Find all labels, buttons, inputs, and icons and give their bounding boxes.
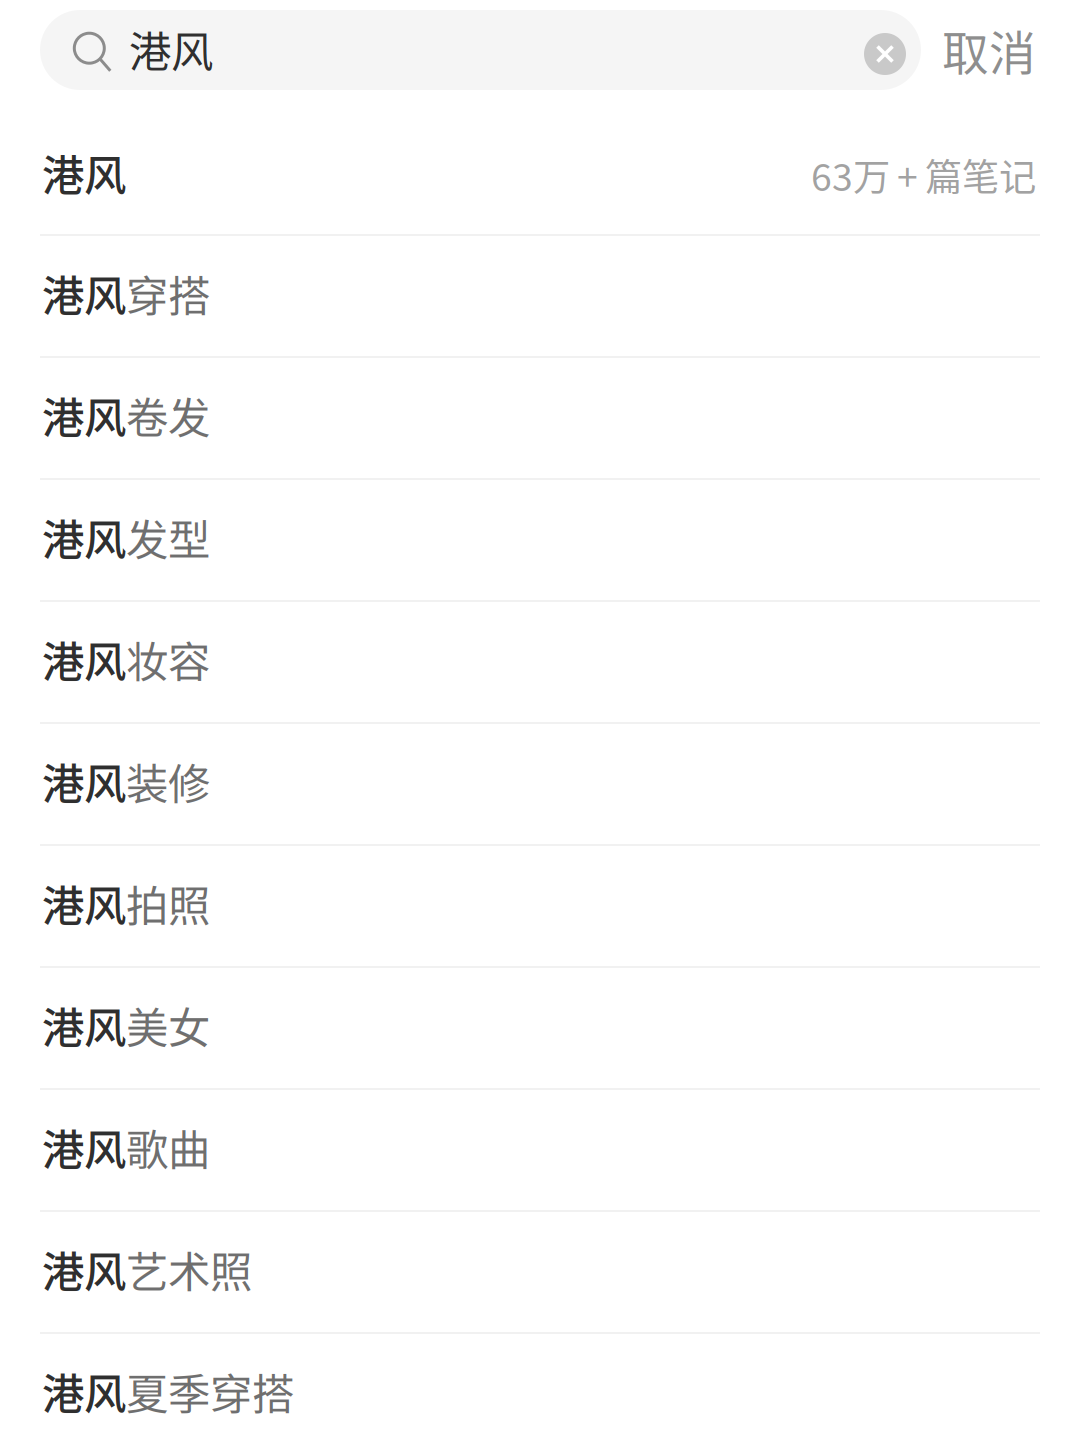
staticText: 港风 [42, 263, 126, 323]
staticText: 艺术照 [126, 1239, 252, 1299]
staticText: 穿搭 [126, 263, 210, 323]
staticText: 港风 [42, 995, 126, 1055]
staticText: 港风 [42, 629, 126, 689]
staticText: 卷发 [126, 385, 210, 445]
staticText: 港风 [42, 1117, 126, 1177]
staticText: 歌曲 [126, 1117, 210, 1177]
staticText: 港风 [42, 751, 126, 811]
button[interactable]: 取消 [942, 10, 1036, 90]
staticText: 63万 + 篇笔记 [811, 148, 1036, 201]
button[interactable]: 港风 [0, 236, 1080, 356]
staticText: 港风 [42, 507, 126, 567]
button[interactable]: 港风 [0, 358, 1080, 478]
button[interactable]: 港风 [0, 846, 1080, 966]
button[interactable]: 港风 [0, 1334, 1080, 1437]
staticText: 装修 [126, 751, 210, 811]
button[interactable]: 港风 [0, 480, 1080, 600]
staticText: 港风 [42, 143, 126, 202]
staticText: 港风 [42, 1361, 126, 1421]
button[interactable]: 港风 [0, 102, 1080, 234]
staticText: 拍照 [126, 873, 210, 933]
staticText: 发型 [126, 507, 210, 567]
staticText: 美女 [126, 995, 210, 1055]
staticText: 夏季穿搭 [126, 1361, 294, 1421]
staticText: 妆容 [126, 629, 210, 689]
button[interactable]: 港风 [0, 1090, 1080, 1210]
button[interactable]: 港风 [0, 602, 1080, 722]
staticText: 港风 [42, 1239, 126, 1299]
button[interactable]: 港风 [0, 1212, 1080, 1332]
button[interactable]: 港风 [0, 724, 1080, 844]
button[interactable]: Clear search text [864, 25, 906, 75]
staticText: 港风 [42, 385, 126, 445]
staticText: 港风 [42, 873, 126, 933]
staticText: 港风 [129, 19, 213, 79]
staticText: 取消 [942, 17, 1036, 83]
button[interactable]: 港风 [0, 968, 1080, 1088]
